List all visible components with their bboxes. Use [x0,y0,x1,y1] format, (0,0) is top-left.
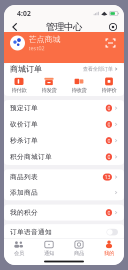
staticText: 13 [104,173,110,181]
staticText: 0 [107,121,110,128]
staticText: 商品列表 [10,173,38,181]
staticText: 芒点商城 [28,34,60,44]
staticText: 积分商城订单 [10,153,52,161]
staticText: 秒杀订单 [10,136,38,145]
button[interactable]: Settings [105,22,121,32]
staticText: 0 [107,105,110,112]
button[interactable]: 我的 [94,239,124,258]
button[interactable]: 添加商品 [4,185,124,200]
button[interactable]: 待收货 [64,75,94,96]
button[interactable]: 预定订单 [4,100,124,116]
staticText: 订单语音通知 [10,228,52,236]
staticText: 砍价订单 [10,120,38,128]
staticText: 添加商品 [10,188,38,197]
staticText: 会员 [14,250,24,256]
staticText: 待评价 [101,87,116,94]
staticText: 管理中心 [46,21,82,33]
staticText: 0 [107,137,110,144]
button[interactable]: 商品列表 [4,169,124,185]
button[interactable]: 秒杀订单 [4,132,124,149]
staticText: 商城订单 [10,64,42,74]
staticText: 4:02 [17,9,31,18]
staticText: 待发货 [41,87,56,94]
button[interactable]: 待付款 [4,75,34,96]
staticText: 我的 [104,250,114,256]
button[interactable]: 砍价订单 [4,116,124,132]
button[interactable]: 通知 [34,239,64,258]
staticText: 待收货 [71,87,86,94]
button[interactable]: Scan QR code [103,35,118,50]
button[interactable]: 查看全部订单 [83,66,118,72]
staticText: 我的积分 [10,208,38,217]
staticText: 查看全部订单 [83,66,113,72]
staticText: 商品 [74,250,84,256]
button[interactable]: Back [7,22,23,32]
button[interactable]: 商品 [64,239,94,258]
staticText: 待付款 [11,87,26,94]
staticText: 预定订单 [10,104,38,112]
button[interactable]: 订单语音通知 [4,224,124,240]
button[interactable]: 积分商城订单 [4,149,124,165]
staticText: 0 [107,209,110,216]
button[interactable]: 会员 [4,239,34,258]
button[interactable]: 待评价 [94,75,124,96]
staticText: 通知 [44,250,54,256]
staticText: test02 [28,45,44,52]
staticText: 0 [107,153,110,160]
button[interactable]: 我的积分 [4,205,124,221]
button[interactable]: 待发货 [34,75,64,96]
